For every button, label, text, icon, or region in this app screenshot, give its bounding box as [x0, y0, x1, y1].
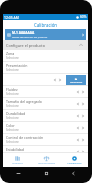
button[interactable]: Next [81, 90, 85, 94]
staticText: Seleccione [6, 140, 19, 144]
button[interactable]: Next [58, 78, 62, 82]
staticText: Control de contracción [6, 135, 44, 140]
staticText: Seleccione [6, 116, 19, 120]
button[interactable]: Previous [53, 78, 57, 82]
button[interactable]: Home [44, 171, 49, 176]
button[interactable]: Productos [3, 153, 32, 167]
staticText: 12:05 AM [4, 15, 19, 20]
button[interactable]: Tamaño del agregado [3, 98, 88, 110]
staticText: Zona [6, 51, 15, 56]
staticText: Seleccione [6, 152, 19, 156]
button[interactable]: Next [81, 126, 85, 130]
staticText: Tabla de medida [38, 162, 55, 165]
button[interactable]: Next [81, 138, 85, 142]
button[interactable]: Next [81, 150, 85, 154]
button[interactable]: Presentación [3, 62, 88, 74]
staticText: Seleccione [6, 104, 19, 108]
button[interactable]: Back [71, 171, 76, 176]
button[interactable]: Tabla de medida [32, 153, 60, 167]
staticText: 60% [80, 15, 87, 19]
button[interactable]: Durabilidad [3, 110, 88, 122]
staticText: Presentación [6, 63, 28, 68]
button[interactable]: Next [81, 114, 85, 118]
staticText: Fluidez [6, 87, 18, 92]
staticText: Seleccione [6, 128, 19, 132]
button[interactable]: Previous [76, 102, 80, 106]
staticText: Seleccione [6, 92, 19, 96]
button[interactable]: Previous [76, 90, 80, 94]
button[interactable]: Configuración [60, 153, 88, 167]
staticText: Configure el producto [6, 43, 46, 48]
staticText: Seleccionar [70, 81, 83, 84]
staticText: Color [6, 123, 15, 128]
button[interactable]: Previous [76, 126, 80, 130]
staticText: Calibración [34, 22, 58, 28]
other: Open product [81, 33, 85, 37]
button[interactable]: Previous [76, 138, 80, 142]
staticText: Productos [12, 162, 23, 165]
button[interactable]: Control de contracción [3, 134, 88, 146]
button[interactable]: Seleccionar [66, 75, 86, 85]
button[interactable]: M-1 AAAAAAA [5, 29, 86, 40]
staticText: Configuración [67, 162, 82, 165]
staticText: Seleccione [6, 56, 19, 60]
button[interactable]: Zona [3, 50, 88, 62]
staticText: Tamaño del agregado [6, 99, 42, 104]
staticText: M-1 AAAAAAA [12, 31, 35, 35]
button[interactable]: Recents [16, 171, 21, 176]
button[interactable]: Previous [76, 114, 80, 118]
button[interactable]: Estabilidad [3, 146, 88, 158]
staticText: Precio del saco 50 kg: $246.00 [12, 35, 48, 38]
button[interactable]: Fluidez [3, 86, 88, 98]
other: Collapse [79, 43, 83, 47]
staticText: Seleccione [6, 68, 19, 72]
button[interactable]: Color [3, 122, 88, 134]
button[interactable]: Configure el producto [3, 40, 88, 50]
staticText: Estabilidad [6, 147, 24, 152]
staticText: Durabilidad [6, 111, 26, 116]
button[interactable]: Next [81, 102, 85, 106]
button[interactable]: Previous [76, 150, 80, 154]
